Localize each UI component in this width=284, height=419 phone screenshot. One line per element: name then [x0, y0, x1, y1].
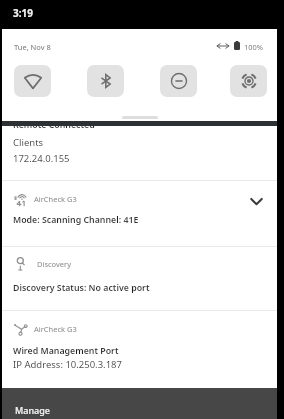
button[interactable]: Flashlight	[230, 65, 267, 97]
staticText: Mode: Scanning Channel: 41E	[13, 214, 139, 226]
staticText: IP Address: 10.250.3.187	[13, 358, 122, 371]
staticText: 3:19	[13, 6, 33, 20]
staticText: Clients	[13, 136, 44, 149]
staticText: Manage	[15, 404, 50, 416]
button[interactable]: Bluetooth	[87, 65, 124, 97]
staticText: Wired Management Port	[13, 345, 119, 357]
staticText: Discovery Status: No active port	[13, 282, 150, 294]
button[interactable]: Do not disturb	[160, 65, 197, 97]
button[interactable]: Manage	[2, 388, 277, 419]
staticText: 100%	[244, 42, 264, 52]
staticText: AirCheck G3	[34, 194, 77, 204]
button[interactable]: AirCheck G3	[2, 180, 277, 246]
button[interactable]: AirCheck G3	[2, 310, 277, 387]
staticText: AirCheck G3	[34, 324, 77, 334]
staticText: Discovery	[37, 259, 71, 269]
staticText: Tue, Nov 8	[14, 42, 51, 52]
button[interactable]: Discovery	[2, 246, 277, 310]
staticText: Remote Connected	[13, 119, 95, 131]
button[interactable]: Wi-Fi	[14, 65, 51, 97]
staticText: 172.24.0.155	[13, 152, 70, 165]
